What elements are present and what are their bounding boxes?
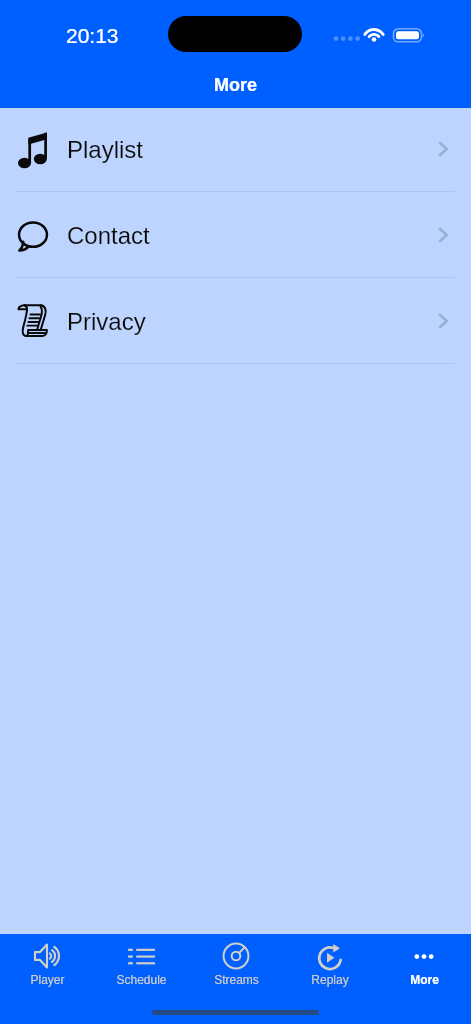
staticText: Streams bbox=[214, 973, 259, 986]
staticText: 20:13 bbox=[66, 24, 119, 47]
staticText: More bbox=[410, 973, 439, 986]
other: Streams bbox=[222, 942, 250, 970]
button[interactable]: Player bbox=[0, 934, 94, 986]
button[interactable]: Replay bbox=[283, 934, 377, 986]
other: Replay bbox=[316, 942, 344, 970]
staticText: Privacy bbox=[67, 308, 146, 335]
staticText: More bbox=[214, 75, 258, 95]
staticText: Schedule bbox=[116, 973, 167, 986]
staticText: Contact bbox=[67, 222, 150, 249]
button[interactable]: Playlist bbox=[0, 106, 471, 192]
other: Player bbox=[33, 942, 61, 970]
staticText: Replay bbox=[311, 973, 349, 986]
staticText: Playlist bbox=[67, 136, 144, 163]
button[interactable]: Schedule bbox=[94, 934, 188, 986]
button[interactable]: More bbox=[377, 934, 471, 986]
button[interactable]: Privacy bbox=[0, 278, 471, 364]
staticText: Player bbox=[30, 973, 65, 986]
other: More bbox=[410, 942, 438, 970]
button[interactable]: Streams bbox=[189, 934, 283, 986]
button[interactable]: Contact bbox=[0, 192, 471, 278]
other: Schedule bbox=[127, 942, 155, 970]
